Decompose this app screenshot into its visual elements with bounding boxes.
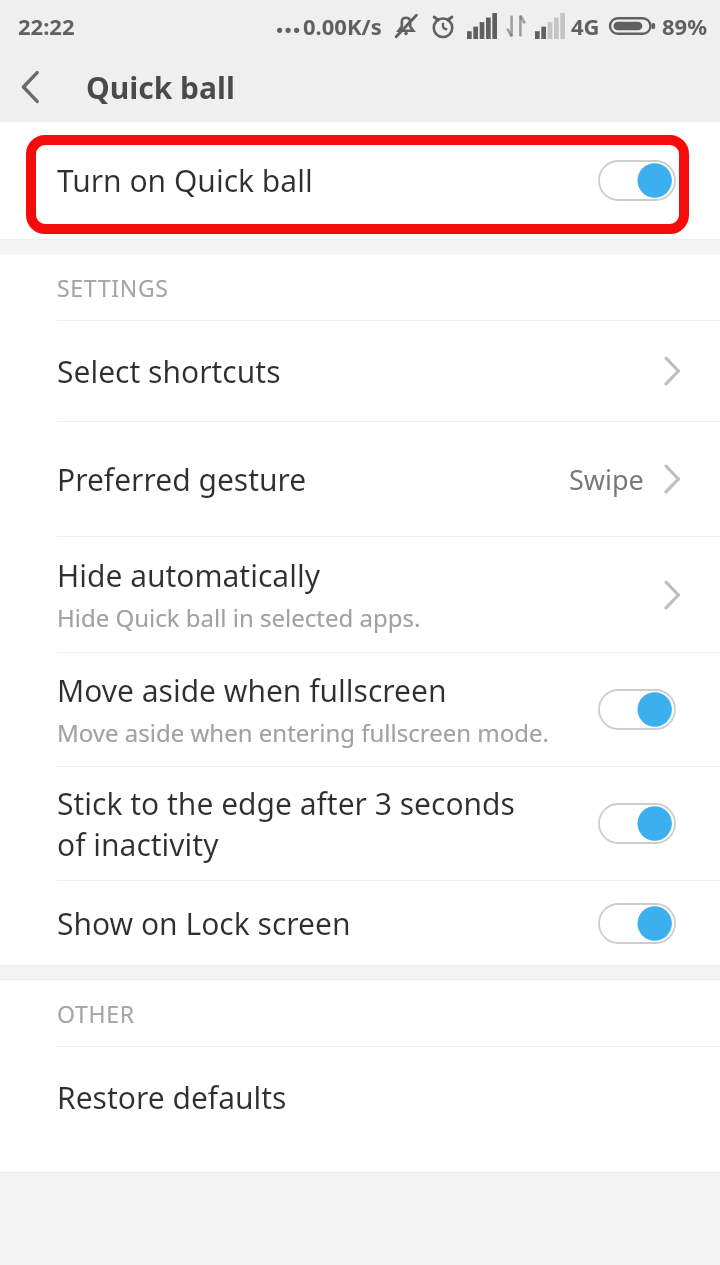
staticText: Swipe	[569, 461, 644, 498]
staticText: OTHER	[57, 998, 135, 1029]
button[interactable]: Stick to the edge after 3 seconds	[0, 767, 720, 880]
staticText: SETTINGS	[57, 272, 169, 303]
staticText: 89%	[662, 11, 708, 41]
staticText: 4G	[571, 11, 600, 41]
staticText: 22:22	[18, 11, 75, 41]
staticText: Show on Lock screen	[57, 903, 598, 944]
button[interactable]: Turn on Quick ball	[0, 122, 720, 239]
staticText: Select shortcuts	[57, 351, 662, 392]
staticText: Hide automatically	[57, 555, 320, 596]
button[interactable]: Back	[0, 56, 62, 118]
staticText: Move aside when fullscreen	[57, 670, 447, 711]
button[interactable]: Restore defaults	[0, 1047, 720, 1147]
button[interactable]: Select shortcuts	[0, 321, 720, 421]
button[interactable]: Hide automatically	[0, 537, 720, 652]
button[interactable]: Preferred gesture	[0, 422, 720, 536]
staticText: Quick ball	[86, 67, 235, 108]
staticText: Turn on Quick ball	[57, 160, 598, 201]
staticText: of inactivity	[57, 824, 219, 865]
staticText: Stick to the edge after 3 seconds	[57, 783, 515, 824]
staticText: Restore defaults	[57, 1077, 682, 1118]
staticText: Move aside when entering fullscreen mode…	[57, 716, 550, 749]
button[interactable]: Show on Lock screen	[0, 881, 720, 965]
staticText: 0.00K/s	[303, 11, 382, 41]
button[interactable]: Move aside when fullscreen	[0, 653, 720, 766]
staticText: Preferred gesture	[57, 459, 569, 500]
staticText: Hide Quick ball in selected apps.	[57, 601, 421, 634]
